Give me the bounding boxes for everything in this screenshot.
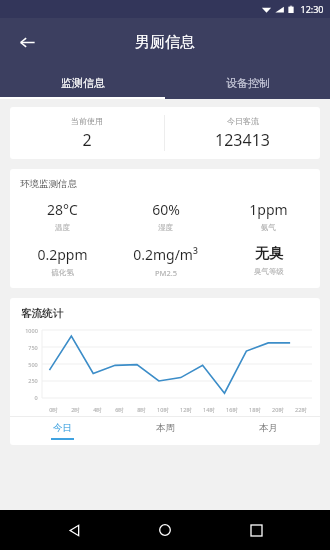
button[interactable]: 今日 — [10, 417, 114, 445]
staticText: 本月 — [259, 422, 278, 434]
staticText: 20时 — [272, 406, 284, 414]
staticText: 湿度 — [158, 223, 173, 232]
button[interactable]: 28°C — [10, 200, 114, 232]
staticText: 750 — [28, 344, 38, 351]
staticText: 今日客流 — [227, 116, 259, 126]
staticText: 2 — [82, 129, 92, 151]
staticText: 500 — [28, 361, 38, 368]
staticText: 臭气等级 — [254, 267, 284, 276]
staticText: 0.2ppm — [37, 245, 88, 264]
staticText: 监测信息 — [61, 76, 105, 90]
button[interactable]: Home — [148, 513, 182, 547]
button[interactable]: 无臭 — [217, 245, 320, 276]
staticText: 1000 — [25, 327, 38, 334]
button[interactable]: Back — [10, 25, 44, 59]
staticText: PM2.5 — [155, 268, 177, 278]
staticText: 12时 — [180, 406, 192, 414]
button[interactable]: 设备控制 — [165, 66, 330, 99]
button[interactable]: 0.2ppm — [10, 245, 114, 277]
staticText: 250 — [28, 377, 38, 384]
staticText: 今日 — [53, 422, 72, 434]
staticText: 28°C — [47, 200, 78, 219]
staticText: 12:30 — [300, 3, 324, 15]
staticText: 2时 — [71, 406, 80, 414]
button[interactable]: 1ppm — [217, 200, 320, 232]
staticText: 16时 — [226, 406, 238, 414]
staticText: 无臭 — [255, 245, 283, 263]
staticText: 123413 — [215, 129, 270, 151]
staticText: 10时 — [157, 406, 169, 414]
button[interactable]: Back — [57, 513, 91, 547]
button[interactable]: 0.2mg/m³ — [114, 245, 217, 278]
staticText: 硫化氢 — [51, 268, 74, 277]
button[interactable]: 本月 — [217, 417, 320, 445]
staticText: 0.2mg/m³ — [133, 245, 198, 264]
staticText: 8时 — [137, 406, 146, 414]
staticText: 22时 — [295, 406, 307, 414]
staticText: 环境监测信息 — [20, 178, 77, 190]
staticText: 温度 — [55, 223, 70, 232]
staticText: 0时 — [49, 406, 58, 414]
staticText: 14时 — [203, 406, 215, 414]
button[interactable]: 当前使用 — [10, 107, 164, 159]
button[interactable]: Recent apps — [239, 513, 273, 547]
staticText: 18时 — [249, 406, 261, 414]
staticText: 设备控制 — [226, 76, 270, 90]
button[interactable]: 监测信息 — [0, 66, 165, 99]
button[interactable]: 60% — [114, 200, 217, 232]
staticText: 60% — [152, 200, 180, 219]
staticText: 1ppm — [249, 200, 288, 219]
button[interactable]: 今日客流 — [165, 107, 320, 159]
staticText: 客流统计 — [21, 307, 63, 320]
staticText: 本周 — [156, 422, 175, 434]
staticText: 当前使用 — [71, 116, 103, 126]
staticText: 0 — [34, 394, 38, 401]
staticText: 4时 — [93, 406, 102, 414]
staticText: 男厕信息 — [135, 33, 195, 52]
button[interactable]: 本周 — [114, 417, 217, 445]
staticText: 氨气 — [261, 223, 276, 232]
staticText: 6时 — [115, 406, 124, 414]
